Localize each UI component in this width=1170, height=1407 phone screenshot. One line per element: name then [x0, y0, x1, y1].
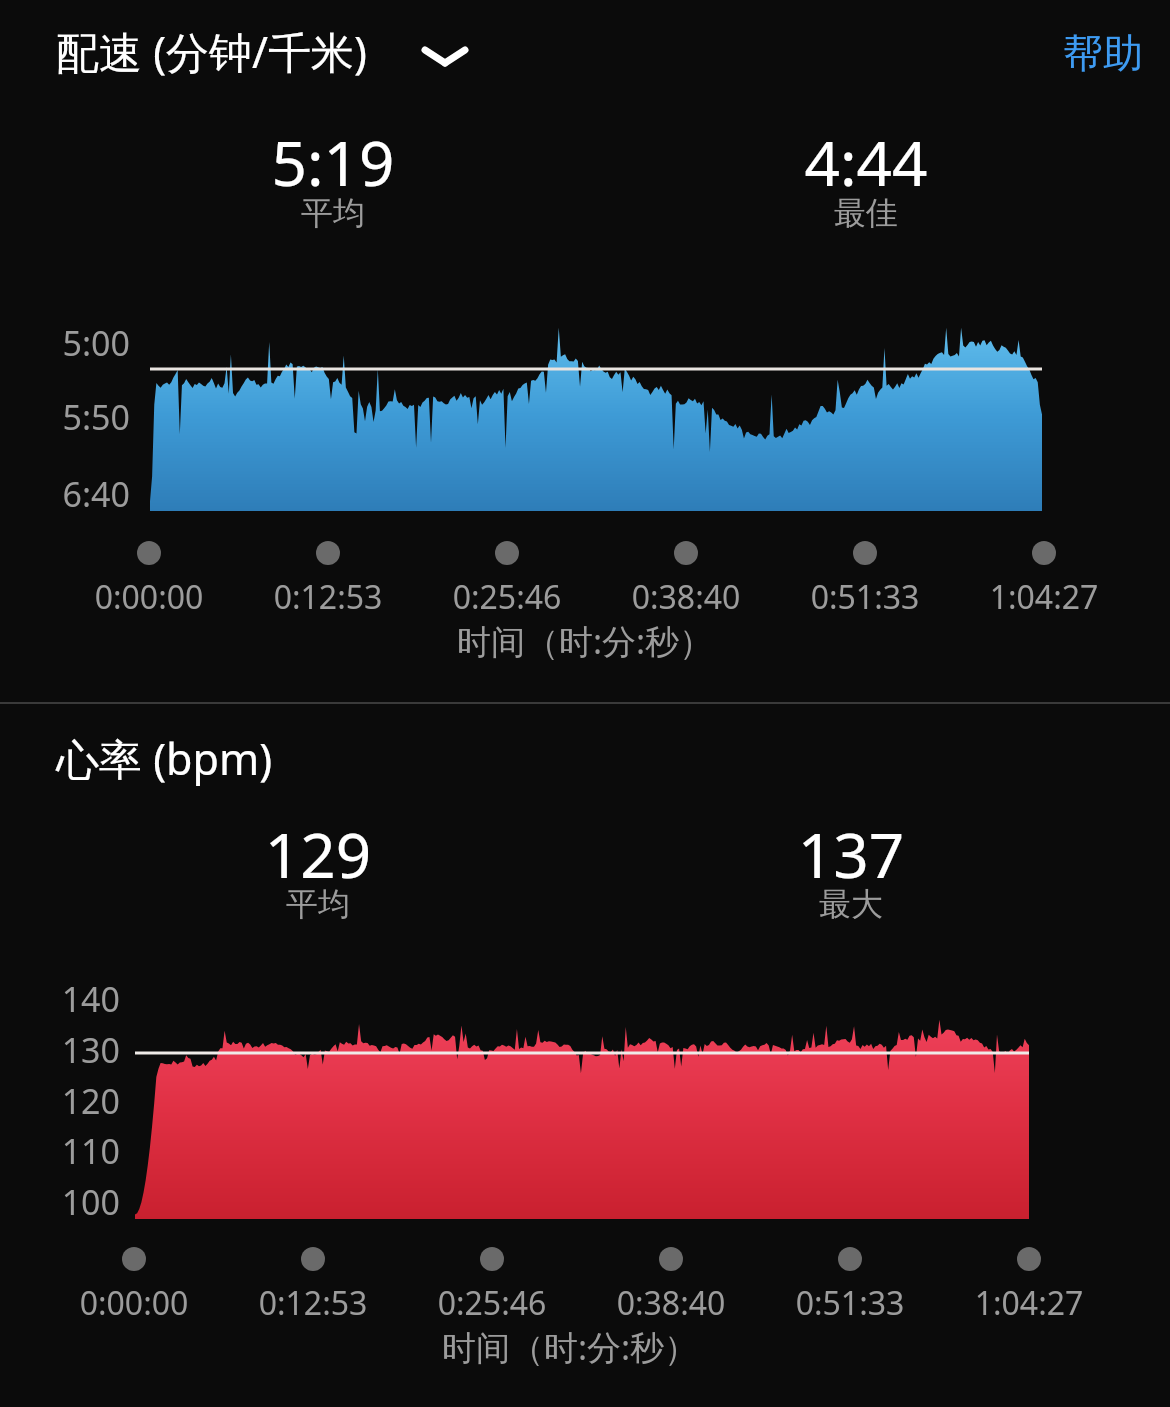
staticText: 心率 (bpm) [56, 729, 273, 788]
button[interactable] [20, 18, 460, 88]
staticText: 4:44 [656, 120, 1076, 210]
staticText: 时间（时:分:秒） [360, 1324, 780, 1373]
staticText: 0:51:33 [640, 1281, 1060, 1327]
staticText: 0:38:40 [476, 575, 896, 621]
staticText: 137 [641, 812, 1061, 902]
button[interactable] [1050, 18, 1150, 88]
staticText: 5:50 [0, 394, 130, 443]
staticText: 帮助 [1063, 28, 1143, 78]
staticText: 100 [0, 1179, 120, 1228]
staticText: 0:00:00 [0, 1281, 344, 1327]
staticText: 0:25:46 [282, 1281, 702, 1327]
staticText: 140 [0, 976, 120, 1025]
staticText: 0:12:53 [118, 575, 538, 621]
staticText: 1:04:27 [834, 575, 1170, 621]
staticText: 129 [108, 812, 528, 902]
staticText: 最大 [641, 884, 1061, 930]
staticText: 5:19 [123, 120, 543, 210]
staticText: 平均 [123, 193, 543, 239]
staticText: 1:04:27 [819, 1281, 1170, 1327]
staticText: 6:40 [0, 471, 130, 520]
staticText: 配速 (分钟/千米) [56, 22, 367, 81]
staticText: 130 [0, 1027, 120, 1076]
staticText: 0:38:40 [461, 1281, 881, 1327]
staticText: 最佳 [656, 193, 1076, 239]
staticText: 110 [0, 1128, 120, 1177]
staticText: 0:25:46 [297, 575, 717, 621]
staticText: 5:00 [0, 320, 130, 369]
staticText: 120 [0, 1078, 120, 1127]
staticText: 0:12:53 [103, 1281, 523, 1327]
staticText: 平均 [108, 884, 528, 930]
staticText: 0:00:00 [0, 575, 359, 621]
staticText: 时间（时:分:秒） [375, 618, 795, 667]
staticText: 0:51:33 [655, 575, 1075, 621]
